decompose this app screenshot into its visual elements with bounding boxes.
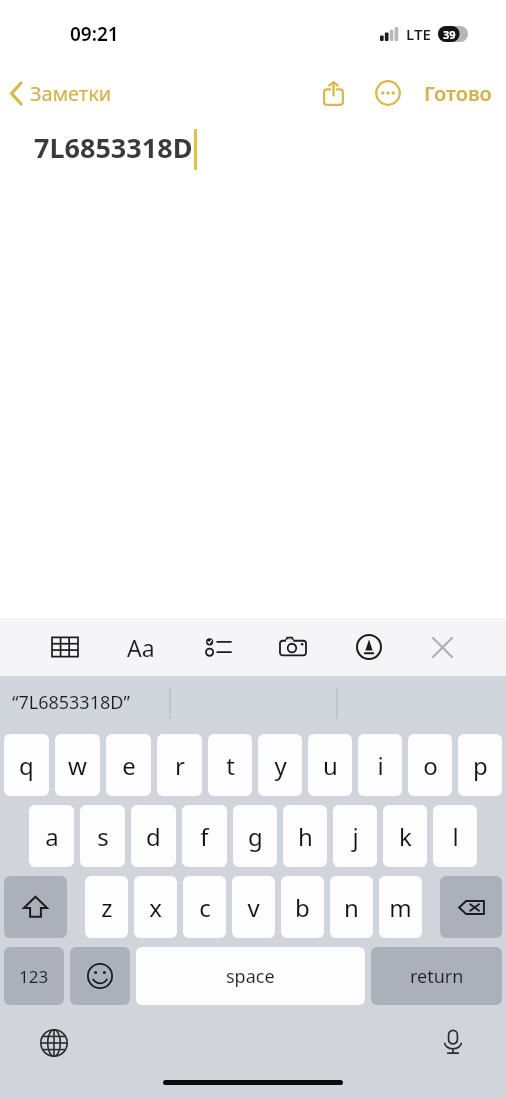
button[interactable]: Close keyboard — [423, 628, 462, 667]
button[interactable]: Shift — [4, 876, 67, 938]
staticText: f — [200, 820, 209, 853]
staticText: 123 — [19, 965, 49, 988]
button[interactable]: s — [80, 805, 125, 867]
staticText: Aa — [127, 632, 155, 663]
staticText: n — [344, 891, 359, 924]
staticText: 39 — [443, 27, 456, 42]
staticText: g — [248, 820, 263, 853]
button[interactable]: h — [283, 805, 327, 867]
button[interactable]: g — [233, 805, 277, 867]
button[interactable]: o — [408, 734, 452, 796]
button[interactable]: u — [308, 734, 352, 796]
button[interactable]: return — [371, 947, 502, 1005]
button[interactable]: m — [379, 876, 422, 938]
staticText: v — [247, 891, 260, 924]
staticText: x — [149, 891, 162, 924]
button[interactable]: Table — [44, 626, 86, 668]
button[interactable]: Camera — [272, 626, 314, 668]
staticText: 09:21 — [70, 21, 119, 47]
button[interactable]: n — [330, 876, 373, 938]
button[interactable]: More options — [366, 71, 410, 115]
button[interactable]: y — [258, 734, 302, 796]
staticText: 7L6853318D — [34, 129, 193, 166]
staticText: y — [274, 749, 287, 782]
button[interactable]: k — [383, 805, 427, 867]
staticText: w — [68, 749, 87, 782]
button[interactable]: b — [281, 876, 324, 938]
button[interactable]: Dictation — [434, 1023, 472, 1061]
staticText: m — [389, 891, 412, 924]
staticText: z — [101, 891, 113, 924]
button[interactable]: e — [106, 734, 151, 796]
button[interactable]: j — [333, 805, 377, 867]
button[interactable]: Change keyboard — [34, 1023, 74, 1063]
button[interactable]: Checklist — [197, 626, 239, 668]
button[interactable]: r — [157, 734, 202, 796]
button[interactable]: x — [134, 876, 177, 938]
staticText: b — [295, 891, 310, 924]
staticText: i — [377, 749, 384, 782]
staticText: q — [19, 749, 34, 782]
staticText: p — [473, 749, 488, 782]
button[interactable]: 123 — [4, 947, 64, 1005]
staticText: j — [352, 820, 359, 853]
button[interactable]: Заметки — [0, 74, 120, 113]
staticText: o — [423, 749, 438, 782]
button[interactable]: space — [136, 947, 365, 1005]
button[interactable]: Backspace — [440, 876, 502, 938]
button[interactable]: w — [55, 734, 100, 796]
button[interactable]: p — [458, 734, 502, 796]
button[interactable]: Text format — [119, 624, 163, 671]
staticText: l — [452, 820, 459, 853]
staticText: t — [226, 749, 235, 782]
button[interactable]: d — [131, 805, 176, 867]
staticText: LTE — [406, 24, 431, 44]
staticText: a — [45, 820, 59, 853]
button[interactable]: q — [4, 734, 49, 796]
button[interactable]: Share — [313, 70, 354, 116]
button[interactable]: Emoji — [70, 947, 130, 1005]
staticText: e — [122, 749, 136, 782]
staticText: r — [175, 749, 185, 782]
staticText: Заметки — [30, 80, 112, 107]
staticText: return — [410, 964, 464, 989]
button[interactable]: t — [208, 734, 252, 796]
button[interactable]: l — [433, 805, 477, 867]
button[interactable]: f — [182, 805, 227, 867]
staticText: space — [226, 964, 275, 989]
button[interactable]: Markup — [348, 626, 390, 668]
staticText: k — [399, 820, 412, 853]
button[interactable]: z — [85, 876, 128, 938]
button[interactable]: v — [232, 876, 275, 938]
button[interactable]: a — [29, 805, 74, 867]
button[interactable]: Готово — [416, 72, 500, 115]
staticText: s — [97, 820, 109, 853]
button[interactable]: i — [358, 734, 402, 796]
staticText: u — [323, 749, 338, 782]
staticText: d — [146, 820, 161, 853]
staticText: h — [298, 820, 313, 853]
button[interactable]: “7L6853318D” — [12, 690, 130, 715]
staticText: c — [199, 891, 211, 924]
staticText: Готово — [424, 80, 492, 107]
button[interactable]: c — [183, 876, 226, 938]
